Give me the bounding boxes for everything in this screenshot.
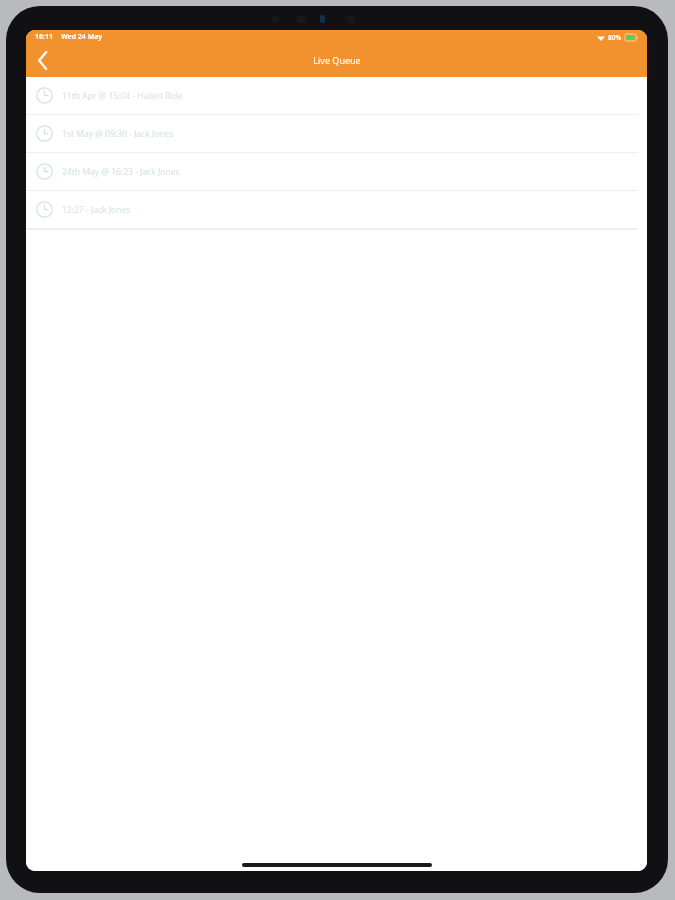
staticText: 16:11	[35, 32, 53, 42]
staticText: 80%	[608, 33, 622, 42]
button[interactable]: 11th Apr @ 15:04 - Hailed Ride	[26, 77, 647, 114]
staticText: 1st May @ 09:30 - Jack Jones	[62, 128, 174, 140]
staticText: Wed 24 May	[61, 32, 103, 42]
staticText: 24th May @ 16:23 - Jack Jones	[62, 166, 180, 178]
staticText: 11th Apr @ 15:04 - Hailed Ride	[62, 90, 183, 102]
staticText: Live Queue	[313, 54, 361, 66]
button[interactable]: 1st May @ 09:30 - Jack Jones	[26, 115, 647, 152]
button[interactable]: 12:27 - Jack Jones	[26, 191, 647, 228]
button[interactable]: Back	[26, 44, 60, 77]
button[interactable]: 24th May @ 16:23 - Jack Jones	[26, 153, 647, 190]
staticText: 12:27 - Jack Jones	[62, 204, 131, 216]
